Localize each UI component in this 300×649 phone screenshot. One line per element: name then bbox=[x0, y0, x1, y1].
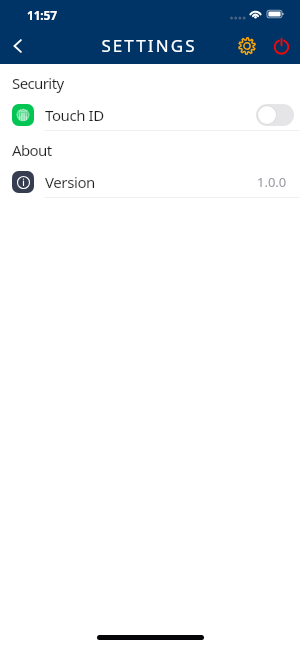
staticText: 11:57 bbox=[27, 7, 57, 23]
button[interactable]: Touch ID toggle bbox=[256, 104, 294, 126]
staticText: Security bbox=[12, 73, 64, 93]
staticText: SETTINGS bbox=[101, 34, 197, 57]
button[interactable]: Touch ID bbox=[0, 99, 300, 131]
button[interactable]: Back bbox=[2, 30, 33, 61]
button[interactable]: Power bbox=[266, 30, 297, 61]
staticText: Version bbox=[45, 172, 95, 192]
staticText: 1.0.0 bbox=[257, 173, 287, 191]
staticText: Touch ID bbox=[45, 105, 104, 125]
button[interactable]: Settings bbox=[231, 30, 262, 61]
button[interactable]: Version bbox=[0, 166, 300, 198]
staticText: About bbox=[12, 140, 52, 160]
